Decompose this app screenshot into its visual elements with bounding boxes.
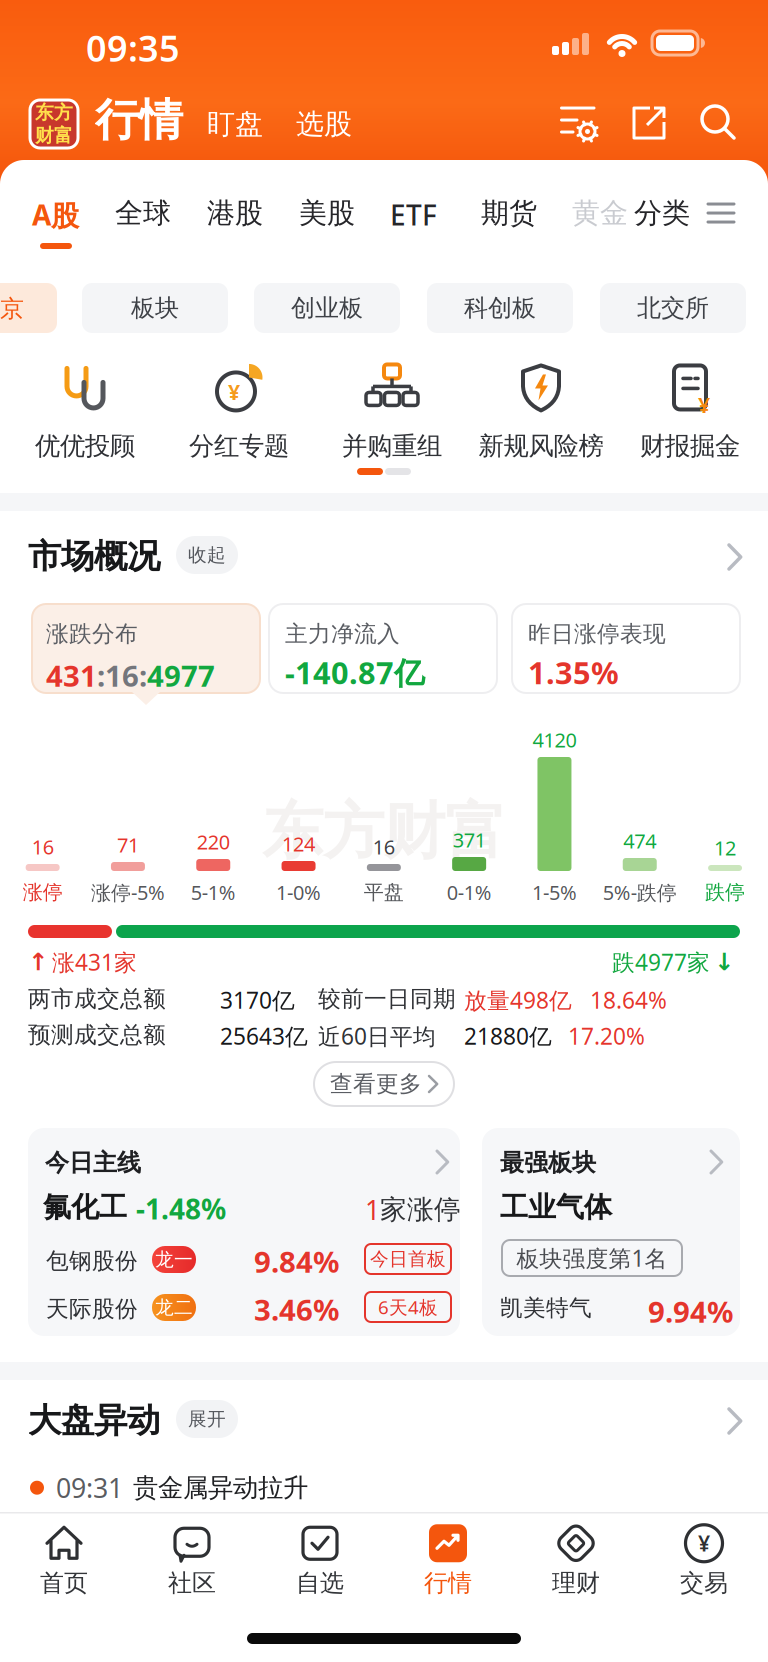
button[interactable]: 盯盘: [207, 107, 263, 141]
button[interactable]: 期货: [481, 196, 537, 230]
staticText: 收起: [188, 543, 226, 566]
staticText: 431: [46, 656, 97, 695]
button[interactable]: Open 大盘异动: [728, 1408, 742, 1434]
button[interactable]: Open 市场概况: [728, 544, 742, 570]
staticText: 3.46%: [254, 1290, 339, 1329]
staticText: ¥: [698, 390, 710, 419]
button[interactable]: 展开: [176, 1400, 238, 1438]
staticText: 东方: [35, 101, 73, 124]
staticText: 财富: [35, 124, 73, 147]
staticText: 1: [365, 1192, 380, 1227]
staticText: 9.94%: [648, 1292, 733, 1331]
staticText: 16: [373, 833, 395, 860]
button[interactable]: Watchlist settings: [560, 104, 600, 142]
staticText: 选股: [296, 107, 352, 141]
button[interactable]: ¥: [640, 1520, 768, 1600]
staticText: 5%-跌停: [603, 879, 677, 906]
button[interactable]: 优优投顾: [9, 358, 161, 464]
button[interactable]: 自选: [256, 1520, 384, 1600]
staticText: 最强板块: [500, 1148, 596, 1177]
button[interactable]: 分类: [634, 196, 690, 230]
button[interactable]: 昨日涨停表现: [512, 604, 740, 693]
staticText: 工业气体: [500, 1190, 612, 1224]
button[interactable]: 涨跌分布: [32, 604, 260, 693]
button[interactable]: 主力净流入: [269, 604, 497, 693]
button[interactable]: 理财: [512, 1520, 640, 1600]
staticText: 6天4板: [378, 1295, 438, 1319]
staticText: 4977: [147, 656, 215, 695]
staticText: 天际股份: [46, 1295, 138, 1323]
staticText: 分红专题: [189, 430, 289, 461]
button[interactable]: 美股: [299, 196, 355, 230]
staticText: 5-1%: [191, 879, 236, 906]
button[interactable]: 09:31: [30, 1470, 768, 1505]
staticText: 1-5%: [532, 879, 577, 906]
button[interactable]: A股: [32, 196, 84, 250]
staticText: 跌停: [705, 880, 745, 905]
staticText: 贵金属异动拉升: [133, 1472, 308, 1503]
staticText: 氟化工: [43, 1190, 127, 1224]
button[interactable]: 板块: [82, 283, 228, 333]
button[interactable]: 最强板块: [482, 1128, 740, 1336]
button[interactable]: ¥: [163, 358, 315, 464]
button[interactable]: ¥: [614, 358, 766, 464]
staticText: 涨431家: [52, 947, 137, 977]
staticText: 龙一: [155, 1248, 193, 1271]
staticText: 两市成交总额: [28, 985, 166, 1013]
button[interactable]: ETF: [390, 196, 437, 233]
button[interactable]: 全球: [115, 196, 171, 230]
button[interactable]: 收起: [176, 536, 238, 574]
staticText: 09:35: [86, 24, 180, 72]
button[interactable]: 科创板: [427, 283, 573, 333]
staticText: 涨停: [23, 880, 63, 905]
staticText: ¥: [698, 1529, 710, 1557]
staticText: ETF: [390, 196, 437, 233]
staticText: 科创板: [464, 293, 536, 323]
staticText: -1.48%: [136, 1190, 226, 1227]
button[interactable]: 创业板: [254, 283, 400, 333]
staticText: 凯美特气: [500, 1294, 592, 1322]
button[interactable]: 北京: [0, 283, 57, 333]
staticText: 16: [105, 656, 139, 695]
staticText: 71: [117, 831, 139, 858]
staticText: 涨跌分布: [46, 620, 138, 648]
staticText: 大盘异动: [28, 1400, 160, 1441]
button[interactable]: 并购重组: [316, 358, 468, 464]
button[interactable]: More categories: [708, 202, 734, 224]
staticText: ↑: [28, 948, 48, 976]
staticText: 220: [197, 828, 230, 855]
staticText: 跌4977家: [612, 947, 710, 977]
staticText: 自选: [296, 1568, 344, 1598]
button[interactable]: 首页: [0, 1520, 128, 1600]
staticText: 25643亿: [220, 1021, 308, 1051]
staticText: 美股: [299, 196, 355, 230]
button[interactable]: 行情: [384, 1520, 512, 1600]
button[interactable]: 今日主线: [28, 1128, 460, 1336]
staticText: 全球: [115, 196, 171, 230]
staticText: 优优投顾: [35, 430, 135, 461]
staticText: 东方财富: [262, 794, 506, 869]
staticText: 近60日平均: [318, 1021, 436, 1051]
staticText: 展开: [188, 1407, 226, 1430]
staticText: 较前一日同期: [318, 985, 456, 1013]
button[interactable]: Search: [700, 104, 738, 142]
button[interactable]: 查看更多: [314, 1062, 454, 1106]
staticText: 交易: [680, 1568, 728, 1598]
staticText: 12: [714, 834, 736, 861]
staticText: 财报掘金: [640, 430, 740, 461]
button[interactable]: 黄金: [572, 196, 628, 230]
staticText: 16: [32, 833, 54, 860]
staticText: 21880亿: [464, 1021, 552, 1051]
button[interactable]: 北交所: [600, 283, 746, 333]
button[interactable]: 港股: [207, 196, 263, 230]
staticText: 龙二: [155, 1296, 193, 1319]
button[interactable]: 社区: [128, 1520, 256, 1600]
staticText: 行情: [95, 93, 183, 147]
staticText: ↓: [714, 948, 734, 976]
button[interactable]: 新规风险榜: [465, 358, 617, 464]
staticText: 行情: [424, 1568, 472, 1598]
button[interactable]: 选股: [296, 107, 352, 141]
button[interactable]: Share: [630, 104, 668, 142]
staticText: 盯盘: [207, 107, 263, 141]
staticText: 新规风险榜: [478, 430, 603, 461]
